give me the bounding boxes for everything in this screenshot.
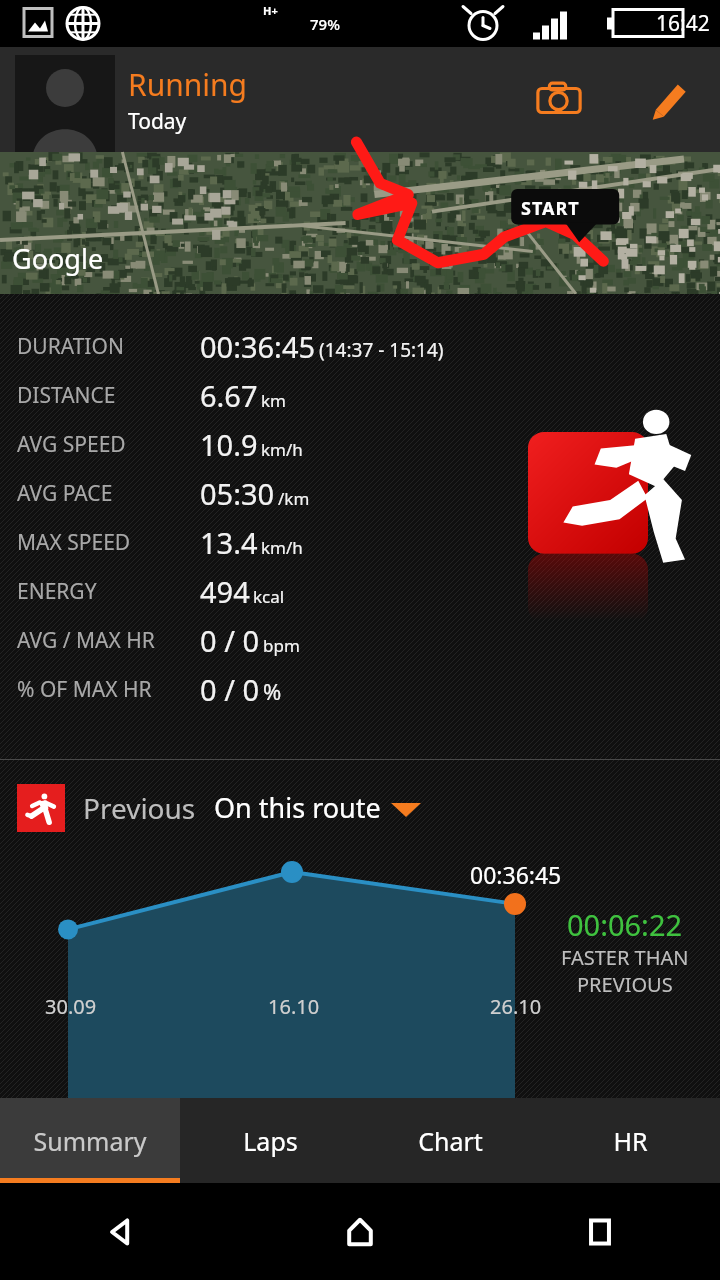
button[interactable]: Previous bbox=[0, 760, 720, 855]
staticText: bpm bbox=[263, 634, 300, 657]
button[interactable]: Edit bbox=[638, 69, 700, 131]
staticText: START bbox=[521, 196, 580, 221]
staticText: HR bbox=[613, 1124, 648, 1158]
staticText: Previous bbox=[83, 789, 196, 827]
button[interactable]: Home bbox=[240, 1183, 480, 1280]
staticText: 6.67 bbox=[200, 376, 258, 415]
staticText: (14:37 - 15:14) bbox=[319, 337, 444, 363]
staticText: AVG PACE bbox=[17, 479, 113, 508]
button[interactable]: Summary bbox=[0, 1098, 180, 1183]
staticText: DISTANCE bbox=[17, 381, 116, 410]
button[interactable]: Add photo bbox=[528, 69, 590, 131]
button[interactable]: Laps bbox=[180, 1098, 360, 1183]
staticText: 30.09 bbox=[45, 993, 97, 1020]
staticText: km/h bbox=[261, 438, 303, 461]
staticText: 0 / 0 bbox=[200, 621, 260, 660]
staticText: ENERGY bbox=[17, 577, 97, 606]
button[interactable]: Profile photo bbox=[15, 55, 115, 152]
staticText: 00:06:22 bbox=[567, 905, 683, 944]
staticText: 10.9 bbox=[200, 425, 258, 464]
staticText: % bbox=[263, 676, 282, 706]
staticText: 00:36:45 bbox=[470, 859, 562, 890]
button[interactable]: Back bbox=[0, 1183, 240, 1280]
staticText: 05:30 bbox=[200, 474, 275, 513]
staticText: km/h bbox=[261, 536, 303, 559]
button[interactable]: Recent apps bbox=[480, 1183, 720, 1280]
staticText: AVG SPEED bbox=[17, 430, 126, 459]
staticText: Google bbox=[12, 240, 104, 277]
staticText: FASTER THAN bbox=[561, 944, 689, 971]
staticText: kcal bbox=[253, 585, 285, 608]
staticText: On this route bbox=[214, 789, 381, 826]
staticText: DURATION bbox=[17, 332, 124, 361]
staticText: Summary bbox=[33, 1124, 147, 1158]
staticText: % OF MAX HR bbox=[17, 675, 152, 704]
staticText: Running bbox=[128, 64, 248, 105]
staticText: 16:42 bbox=[656, 9, 710, 38]
staticText: 16.10 bbox=[268, 993, 320, 1020]
staticText: MAX SPEED bbox=[17, 528, 131, 557]
staticText: Laps bbox=[243, 1124, 298, 1158]
staticText: Today bbox=[128, 107, 187, 136]
staticText: 26.10 bbox=[490, 993, 542, 1020]
staticText: H+ bbox=[263, 3, 278, 18]
staticText: 00:36:45 bbox=[200, 327, 316, 366]
staticText: km bbox=[261, 389, 286, 412]
staticText: 79% bbox=[310, 14, 340, 34]
staticText: 13.4 bbox=[200, 523, 258, 562]
staticText: AVG / MAX HR bbox=[17, 626, 155, 655]
button[interactable]: Route map bbox=[0, 152, 720, 294]
staticText: 494 bbox=[200, 572, 250, 611]
staticText: 0 / 0 bbox=[200, 670, 260, 709]
button[interactable]: Chart bbox=[360, 1098, 540, 1183]
staticText: /km bbox=[278, 487, 310, 510]
staticText: Chart bbox=[418, 1124, 483, 1158]
button[interactable]: HR bbox=[540, 1098, 720, 1183]
staticText: PREVIOUS bbox=[577, 971, 673, 998]
